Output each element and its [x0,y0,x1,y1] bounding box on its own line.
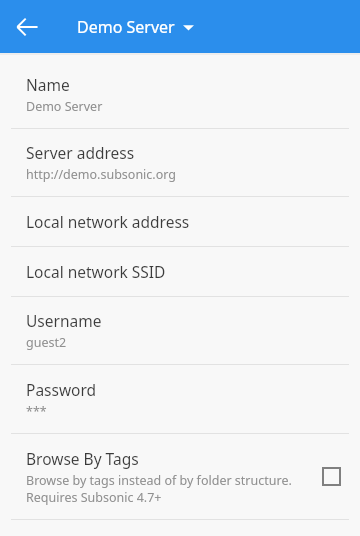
button[interactable]: Back [0,0,53,53]
staticText: Password [26,379,97,400]
staticText: Username [26,310,102,331]
staticText: http://demo.subsonic.org [26,166,176,183]
staticText: Name [26,74,70,95]
staticText: Local network address [26,211,190,232]
staticText: Browse By Tags [26,448,139,469]
button[interactable]: Demo Server [77,16,194,38]
staticText: *** [26,403,47,420]
button[interactable]: Local network address [0,197,360,246]
button[interactable]: Name [0,61,360,128]
button[interactable]: Browse By Tags [0,434,360,519]
staticText: Local network SSID [26,261,166,282]
staticText: Server address [26,142,135,163]
staticText: Demo Server [77,16,175,38]
button[interactable]: Server address [0,129,360,196]
staticText: Browse by tags instead of by folder stru… [26,472,292,505]
button[interactable]: Password [0,365,360,433]
button[interactable]: Username [0,297,360,364]
button[interactable]: Local network SSID [0,247,360,296]
other: Browse By Tags toggle [323,468,340,485]
staticText: guest2 [26,334,67,351]
staticText: Demo Server [26,98,103,115]
